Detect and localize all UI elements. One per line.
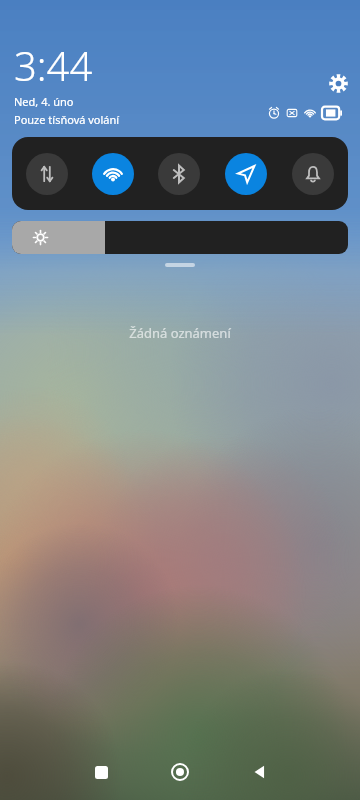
button[interactable]: Back [243,756,275,788]
button[interactable]: Brightness [12,221,348,254]
button[interactable]: Settings [322,67,354,99]
button[interactable]: Home [164,756,196,788]
button[interactable]: Wi-Fi [92,153,134,195]
button[interactable]: Location [225,153,267,195]
button[interactable]: Recents [85,756,117,788]
staticText: Žádná oznámení [129,324,231,342]
staticText: Pouze tísňová volání [14,112,120,127]
staticText: Ned, 4. úno [14,94,74,109]
button[interactable]: Mobile data [26,153,68,195]
staticText: 3:44 [14,38,93,92]
button[interactable]: Bluetooth [158,153,200,195]
button[interactable]: Silent mode [292,153,334,195]
